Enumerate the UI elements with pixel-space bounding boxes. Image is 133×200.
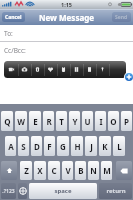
staticText: B (78, 165, 84, 176)
button[interactable]: Cc/Bcc: (0, 42, 133, 59)
button[interactable]: More (109, 61, 122, 78)
button[interactable]: C (48, 161, 60, 180)
staticText: V (65, 165, 71, 176)
staticText: O (110, 116, 117, 127)
button[interactable]: J (85, 136, 97, 156)
staticText: K (102, 141, 108, 152)
button[interactable]: Info (31, 61, 44, 78)
staticText: U (84, 116, 91, 127)
button[interactable]: space (29, 183, 97, 199)
button[interactable]: Send (112, 12, 131, 22)
staticText: Z (24, 165, 29, 176)
button[interactable]: .?123 (1, 183, 16, 199)
staticText: N (90, 165, 97, 176)
staticText: Send (115, 14, 128, 21)
button[interactable] (1, 161, 17, 180)
button[interactable]: L (113, 136, 125, 156)
button[interactable]: F (44, 136, 55, 156)
staticText: 1:15 (61, 1, 72, 8)
button[interactable]: T (56, 111, 67, 131)
staticText: F (47, 141, 52, 152)
button[interactable]: Book (70, 61, 83, 78)
staticText: X (37, 165, 43, 176)
staticText: L (117, 141, 122, 152)
staticText: D (34, 141, 40, 152)
button[interactable]: Add recipient (125, 73, 133, 81)
button[interactable]: return (99, 183, 132, 199)
staticText: A (8, 141, 14, 152)
button[interactable]: Video (5, 61, 18, 78)
button[interactable]: S (18, 136, 29, 156)
staticText: New Message (39, 12, 95, 23)
button[interactable]: I (95, 111, 106, 131)
button[interactable]: X (34, 161, 46, 180)
staticText: T (59, 116, 64, 127)
button[interactable]: Z (20, 161, 32, 180)
staticText: J (90, 141, 93, 152)
button[interactable]: To: (0, 25, 133, 41)
button[interactable]: Cancel (2, 12, 25, 22)
button[interactable]: Q (1, 111, 13, 131)
button[interactable]: E (29, 111, 41, 131)
staticText: To: (4, 29, 13, 38)
button[interactable]: Camera (18, 61, 31, 78)
staticText: C (51, 165, 57, 176)
button[interactable]: M (101, 161, 112, 180)
staticText: I (99, 116, 103, 127)
button[interactable]: K (99, 136, 111, 156)
staticText: P (124, 116, 129, 127)
button[interactable]: Page (83, 61, 96, 78)
staticText: Y (72, 116, 78, 127)
staticText: M (103, 165, 111, 176)
button[interactable] (116, 161, 132, 180)
button[interactable]: Favorite (44, 61, 57, 78)
staticText: .?123 (2, 188, 15, 195)
staticText: Cc/Bcc: (4, 46, 26, 55)
button[interactable]: A (5, 136, 16, 156)
button[interactable]: Clipboard (57, 61, 70, 78)
button[interactable]: B (75, 161, 86, 180)
staticText: E (33, 116, 38, 127)
button[interactable]: U (82, 111, 93, 131)
staticText: S (21, 141, 26, 152)
staticText: W (17, 116, 25, 127)
button[interactable]: Location (96, 61, 109, 78)
button[interactable]: D (31, 136, 42, 156)
button[interactable]: O (108, 111, 119, 131)
staticText: Cancel (5, 14, 22, 21)
button[interactable]: V (62, 161, 73, 180)
staticText: return (106, 187, 126, 195)
staticText: R (46, 116, 52, 127)
staticText: H (74, 141, 81, 152)
button[interactable] (18, 183, 27, 199)
button[interactable]: R (43, 111, 54, 131)
button[interactable]: G (57, 136, 69, 156)
button[interactable]: W (15, 111, 27, 131)
button[interactable]: Y (69, 111, 80, 131)
staticText: Q (4, 116, 11, 127)
button[interactable]: P (121, 111, 132, 131)
button[interactable]: N (88, 161, 99, 180)
staticText: G (60, 141, 66, 152)
button[interactable]: H (71, 136, 83, 156)
staticText: space (54, 187, 72, 195)
